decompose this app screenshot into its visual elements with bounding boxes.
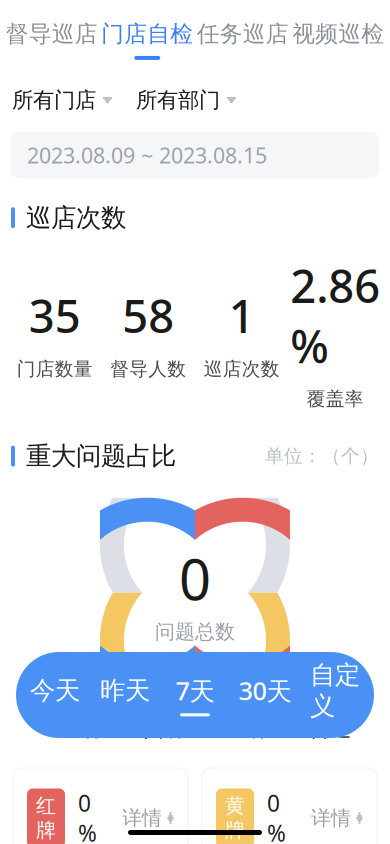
button[interactable]: 任务巡店 xyxy=(195,14,290,66)
staticText: 今天 xyxy=(30,675,80,706)
staticText: 58 xyxy=(122,285,174,346)
staticText: 详情 xyxy=(122,806,162,830)
button[interactable]: 所有部门 xyxy=(136,82,236,118)
button[interactable]: 红牌 xyxy=(13,768,188,844)
staticText: 门店数量 xyxy=(17,358,93,380)
button[interactable]: 黄牌 xyxy=(202,768,377,844)
staticText: 所有门店 xyxy=(12,87,96,113)
staticText: 2.86% xyxy=(290,255,380,376)
staticText: 重大问题占比 xyxy=(26,441,176,472)
button[interactable]: 门店自检 xyxy=(99,14,195,66)
staticText: 35 xyxy=(29,285,81,346)
staticText: 红牌 xyxy=(60,716,102,742)
button[interactable]: 7天 xyxy=(160,652,230,738)
staticText: 0 xyxy=(179,541,211,616)
staticText: 问题总数 xyxy=(155,620,235,644)
staticText: 任务巡店 xyxy=(197,20,289,48)
button[interactable]: 2023.08.09 ~ 2023.08.15 xyxy=(11,132,379,178)
button[interactable]: 昨天 xyxy=(90,652,160,738)
staticText: 30天 xyxy=(238,674,291,707)
button[interactable]: 今天 xyxy=(20,652,90,738)
button[interactable]: 视频巡检 xyxy=(290,14,386,66)
staticText: 单位：（个） xyxy=(265,445,379,468)
staticText: 督导巡店 xyxy=(6,20,98,48)
button[interactable]: 所有门店 xyxy=(12,82,112,118)
button[interactable]: 30天 xyxy=(230,652,300,738)
staticText: 巡店次数 xyxy=(26,202,126,233)
button[interactable]: 自定义 xyxy=(300,652,370,738)
staticText: 视频巡检 xyxy=(292,20,384,48)
staticText: 2023.08.09 ~ 2023.08.15 xyxy=(27,141,267,169)
staticText: 详情 xyxy=(311,806,351,830)
button[interactable]: 督导巡店 xyxy=(4,14,99,66)
staticText: 黄牌 xyxy=(225,793,245,842)
staticText: 0% xyxy=(78,788,97,844)
staticText: 覆盖率 xyxy=(307,388,364,411)
staticText: 蓝牌 xyxy=(226,716,268,742)
staticText: 所有部门 xyxy=(136,87,220,113)
staticText: 0% xyxy=(267,788,286,844)
staticText: 黄牌 xyxy=(143,716,185,742)
staticText: 红牌 xyxy=(36,793,56,842)
staticText: 巡店次数 xyxy=(204,358,280,380)
staticText: 普通 xyxy=(309,716,351,742)
staticText: 1 xyxy=(229,285,255,346)
staticText: 自定义 xyxy=(310,659,360,722)
staticText: 昨天 xyxy=(100,675,150,706)
staticText: 7天 xyxy=(175,674,214,707)
staticText: 督导人数 xyxy=(110,358,186,380)
staticText: 门店自检 xyxy=(101,20,193,48)
